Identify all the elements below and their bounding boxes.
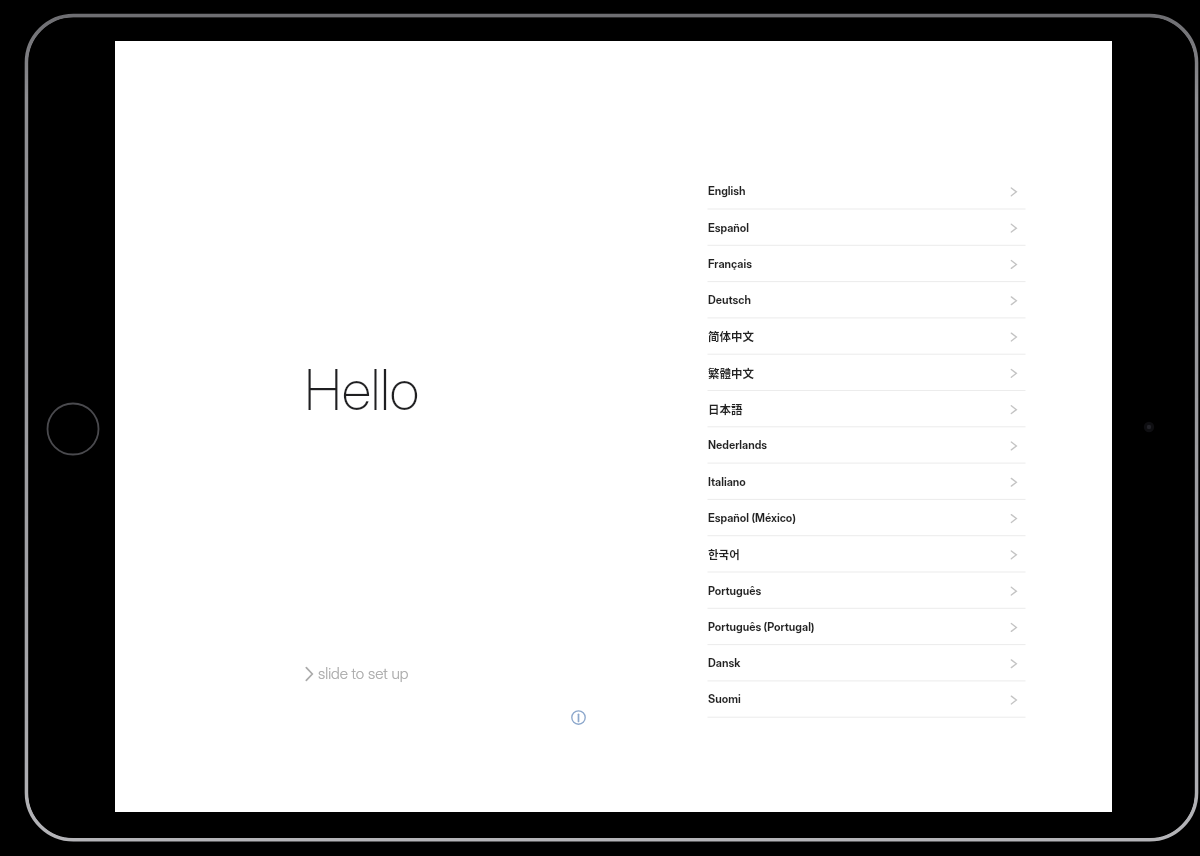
button[interactable]: Nederlands: [708, 426, 1026, 462]
button[interactable]: Dansk: [708, 644, 1026, 680]
staticText: Dansk: [708, 656, 741, 669]
staticText: 한국어: [708, 546, 740, 563]
button[interactable]: Português: [708, 572, 1026, 608]
staticText: Português (Portugal): [708, 620, 815, 633]
staticText: Hello: [304, 356, 420, 423]
button[interactable]: slide to set up: [305, 657, 409, 691]
button[interactable]: Italiano: [708, 463, 1026, 499]
staticText: Nederlands: [708, 438, 768, 451]
button[interactable]: English: [708, 172, 1026, 208]
staticText: Suomi: [708, 692, 741, 705]
staticText: Español: [708, 221, 750, 234]
staticText: Deutsch: [708, 293, 751, 306]
button[interactable]: Português (Portugal): [708, 608, 1026, 644]
button[interactable]: Suomi: [708, 680, 1026, 716]
button[interactable]: Accessibility information: [563, 702, 593, 732]
staticText: Português: [708, 584, 762, 597]
button[interactable]: 한국어: [708, 535, 1026, 571]
button[interactable]: Français: [708, 245, 1026, 281]
staticText: Español (México): [708, 511, 796, 524]
staticText: 简体中文: [708, 328, 754, 345]
button[interactable]: Español: [708, 209, 1026, 245]
staticText: Français: [708, 257, 752, 270]
button[interactable]: 繁體中文: [708, 354, 1026, 390]
staticText: English: [708, 184, 746, 197]
staticText: Italiano: [708, 475, 746, 488]
button[interactable]: Deutsch: [708, 281, 1026, 317]
staticText: 日本語: [708, 401, 743, 418]
button[interactable]: 日本語: [708, 390, 1026, 426]
staticText: slide to set up: [318, 664, 409, 683]
staticText: 繁體中文: [708, 365, 754, 382]
button[interactable]: Español (México): [708, 499, 1026, 535]
button[interactable]: 简体中文: [708, 317, 1026, 353]
